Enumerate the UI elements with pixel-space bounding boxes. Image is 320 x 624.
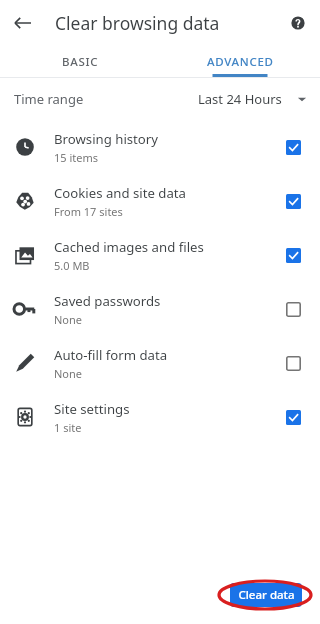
button[interactable]: Cookies and site data: [0, 174, 320, 228]
button[interactable]: Cached images and files: [0, 228, 320, 282]
button[interactable]: BASIC: [0, 46, 160, 77]
button[interactable]: Browsing history: [0, 120, 320, 174]
button[interactable]: Back: [6, 6, 40, 40]
button[interactable]: ADVANCED: [160, 46, 320, 77]
staticText: 5.0 MB: [54, 258, 90, 273]
staticText: Cached images and files: [54, 238, 204, 256]
staticText: Site settings: [54, 400, 130, 418]
staticText: Clear browsing data: [55, 11, 220, 35]
button[interactable]: Auto-fill form data: [0, 336, 320, 390]
staticText: 15 items: [54, 150, 99, 165]
staticText: Browsing history: [54, 130, 159, 148]
staticText: None: [54, 312, 83, 327]
staticText: Time range: [14, 90, 84, 108]
staticText: Auto-fill form data: [54, 346, 168, 364]
button[interactable]: Site settings: [0, 390, 320, 444]
staticText: Saved passwords: [54, 292, 161, 310]
button[interactable]: Time range: [0, 78, 320, 120]
staticText: Cookies and site data: [54, 184, 187, 202]
staticText: None: [54, 366, 83, 381]
button[interactable]: Clear data: [230, 583, 302, 607]
staticText: BASIC: [62, 54, 99, 70]
staticText: Last 24 Hours: [198, 90, 282, 108]
staticText: From 17 sites: [54, 204, 123, 219]
staticText: ADVANCED: [207, 54, 274, 70]
button[interactable]: Help: [282, 7, 314, 39]
staticText: Clear data: [238, 587, 295, 603]
staticText: 1 site: [54, 420, 82, 435]
button[interactable]: Saved passwords: [0, 282, 320, 336]
